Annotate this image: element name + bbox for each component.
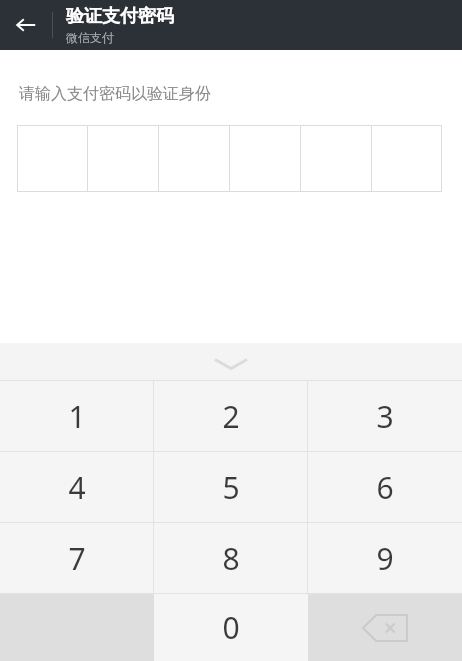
button[interactable]: 3 [308, 381, 462, 451]
button[interactable]: 4 [0, 452, 154, 522]
button[interactable] [229, 125, 300, 192]
staticText: 8 [222, 538, 240, 579]
staticText: 9 [376, 538, 394, 579]
button[interactable]: Back [0, 0, 52, 50]
staticText: 7 [68, 538, 86, 579]
staticText: 4 [68, 467, 86, 508]
staticText: 微信支付 [66, 30, 114, 45]
staticText: 2 [222, 396, 240, 437]
staticText: 请输入支付密码以验证身份 [19, 84, 211, 104]
button[interactable]: Backspace [308, 594, 462, 661]
button[interactable]: 0 [154, 594, 308, 661]
staticText: 0 [222, 607, 240, 648]
staticText: 6 [376, 467, 394, 508]
button[interactable]: 6 [308, 452, 462, 522]
button[interactable]: 8 [154, 523, 308, 593]
staticText: 1 [68, 396, 86, 437]
staticText: 验证支付密码 [66, 5, 174, 28]
button[interactable] [158, 125, 229, 192]
button[interactable]: 1 [0, 381, 154, 451]
button[interactable] [87, 125, 158, 192]
button[interactable] [371, 125, 442, 192]
button[interactable]: 7 [0, 523, 154, 593]
button[interactable]: 5 [154, 452, 308, 522]
button[interactable] [17, 125, 87, 192]
staticText: 3 [376, 396, 394, 437]
staticText: 5 [222, 467, 240, 508]
button[interactable] [300, 125, 371, 192]
button[interactable]: 9 [308, 523, 462, 593]
button[interactable]: 2 [154, 381, 308, 451]
